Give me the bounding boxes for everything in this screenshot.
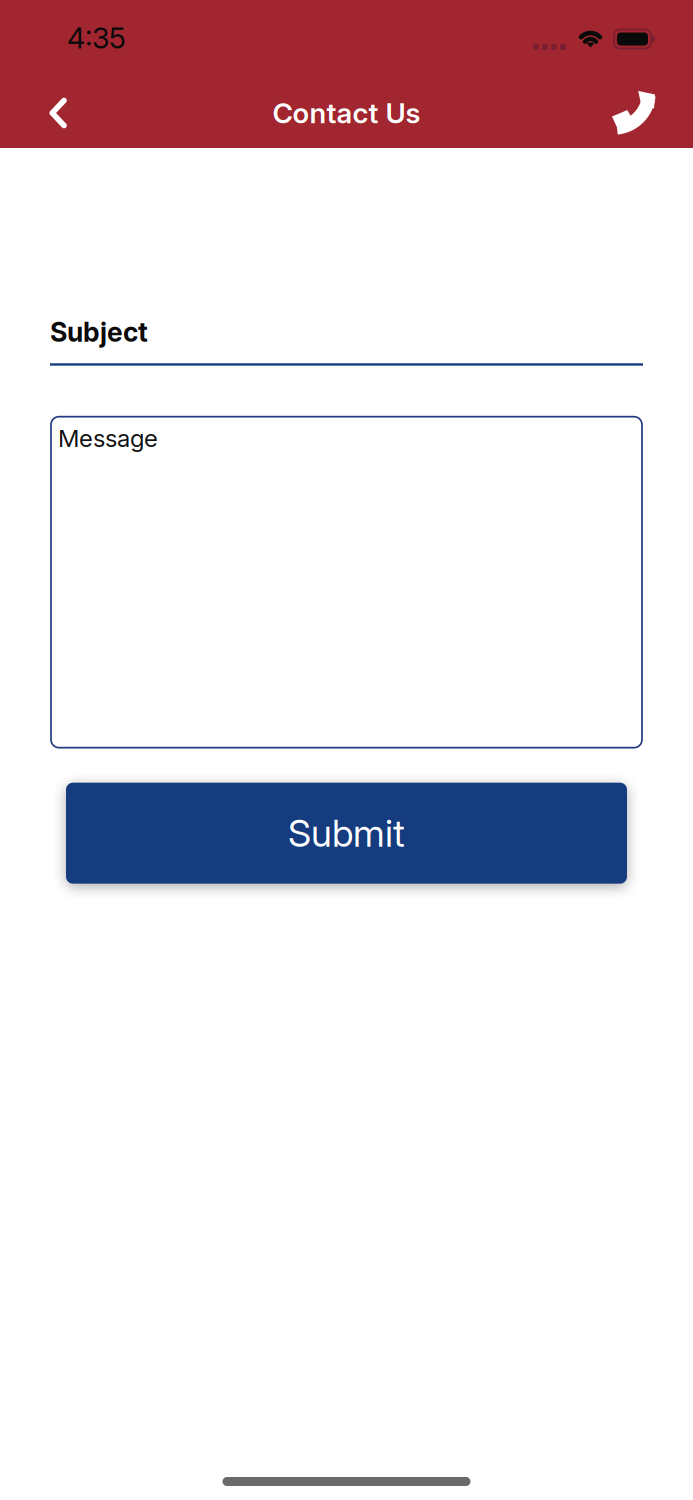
button[interactable]: Back — [0, 78, 91, 147]
staticText: 4:35 — [67, 21, 126, 55]
staticText: Message — [58, 424, 158, 453]
staticText: Contact Us — [272, 96, 420, 130]
button[interactable]: Subject — [50, 316, 643, 366]
button[interactable]: Call — [589, 76, 693, 149]
button[interactable]: Message — [51, 417, 642, 748]
staticText: Submit — [288, 811, 405, 856]
staticText: Subject — [50, 316, 148, 348]
button[interactable]: Submit — [66, 783, 627, 884]
